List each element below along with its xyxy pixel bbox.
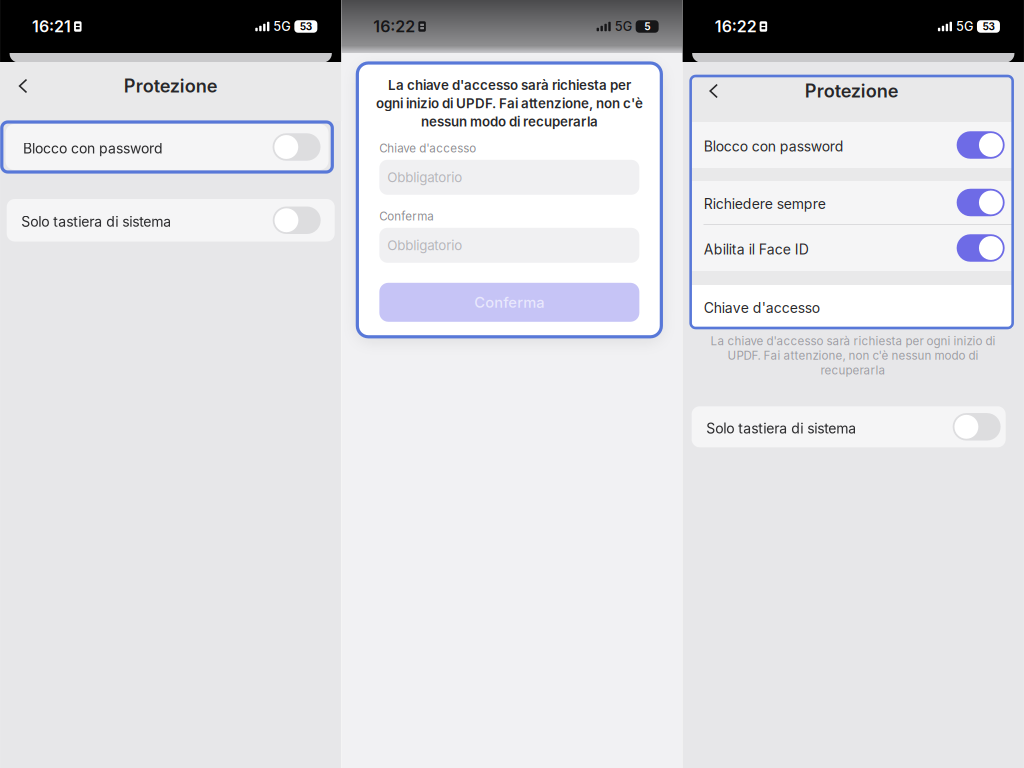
staticText: Protezione [805,80,899,102]
staticText: Solo tastiera di sistema [21,213,171,230]
staticText: 5 [644,20,650,33]
staticText: La chiave d'accesso sarà richiesta per o… [376,77,643,130]
button[interactable]: Blocco con password [5,124,328,170]
staticText: Blocco con password [23,140,163,157]
button[interactable]: Back [703,80,725,102]
staticText: Obbligatorio [387,237,462,253]
button[interactable]: Chiave d'accesso [691,285,1013,328]
button[interactable]: Solo tastiera di sistema [692,406,1006,447]
staticText: Abilita il Face ID [704,241,809,258]
staticText: 53 [982,20,994,33]
staticText: 16:21 [32,17,71,36]
staticText: Conferma [474,293,544,311]
button[interactable]: Back [12,75,34,97]
staticText: Chiave d'accesso [379,141,476,155]
button[interactable]: Solo tastiera di sistema [7,199,335,241]
staticText: 16:22 [715,17,757,36]
staticText: Conferma [379,209,434,223]
staticText: 5G [615,19,632,34]
staticText: Solo tastiera di sistema [706,420,856,437]
button[interactable]: Conferma [379,283,639,322]
button[interactable]: Blocco con password [691,122,1013,168]
staticText: 53 [300,20,312,33]
staticText: Protezione [124,75,218,97]
staticText: 5G [273,19,290,34]
staticText: Chiave d'accesso [704,299,820,316]
staticText: La chiave d'accesso sarà richiesta per o… [710,334,995,377]
staticText: Richiedere sempre [704,195,826,212]
button[interactable]: Abilita il Face ID [691,225,1013,271]
button[interactable]: Richiedere sempre [691,181,1013,224]
staticText: Obbligatorio [387,169,462,185]
staticText: Blocco con password [704,138,844,155]
staticText: 16:22 [373,17,415,36]
staticText: 5G [956,19,973,34]
